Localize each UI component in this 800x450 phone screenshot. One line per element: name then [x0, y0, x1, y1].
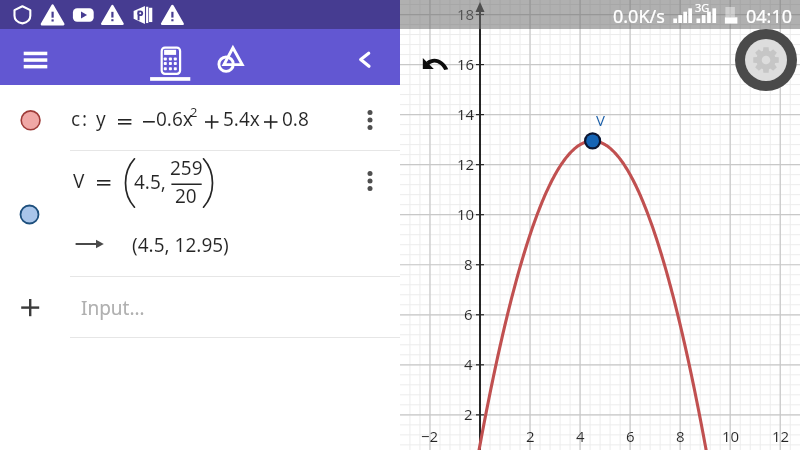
- staticText: 20: [175, 183, 197, 209]
- staticText: 0.6x: [156, 106, 193, 132]
- button[interactable]: Add input: [13, 290, 47, 324]
- staticText: 2: [464, 404, 473, 424]
- button[interactable]: More options: [356, 167, 384, 195]
- staticText: V: [73, 168, 85, 194]
- staticText: 12: [772, 426, 790, 446]
- staticText: −2: [421, 426, 439, 446]
- staticText: 4.5,: [134, 169, 166, 195]
- button[interactable]: More options: [356, 106, 384, 134]
- staticText: 10: [722, 426, 740, 446]
- staticText: 4: [576, 426, 585, 446]
- button[interactable]: [0, 85, 400, 150]
- staticText: V: [596, 110, 606, 130]
- staticText: 0.8: [282, 106, 309, 132]
- staticText: 3G: [695, 0, 710, 15]
- button[interactable]: Calculator: [148, 37, 192, 85]
- staticText: 259: [170, 155, 203, 181]
- staticText: 5.4x: [223, 106, 260, 132]
- staticText: 14: [457, 104, 475, 124]
- staticText: 2: [190, 103, 198, 121]
- button[interactable]: Settings: [735, 29, 797, 91]
- staticText: 2: [526, 426, 535, 446]
- staticText: 8: [676, 426, 685, 446]
- staticText: 18: [457, 4, 475, 24]
- button[interactable]: Geometry: [210, 38, 256, 78]
- staticText: :: [82, 106, 88, 132]
- staticText: 8: [464, 254, 473, 274]
- staticText: 04:10: [746, 4, 793, 29]
- button[interactable]: Undo: [418, 52, 454, 76]
- staticText: Input…: [81, 295, 145, 321]
- staticText: 6: [626, 426, 635, 446]
- staticText: 4: [464, 354, 473, 374]
- staticText: c: [71, 106, 81, 132]
- staticText: y: [96, 106, 106, 132]
- staticText: 16: [457, 54, 475, 74]
- button[interactable]: Back: [350, 41, 382, 73]
- staticText: 0.0K/s: [613, 4, 665, 29]
- staticText: 12: [457, 154, 475, 174]
- staticText: 6: [464, 304, 473, 324]
- staticText: 10: [457, 204, 475, 224]
- staticText: (4.5, 12.95): [132, 232, 229, 258]
- button[interactable]: Menu: [12, 31, 58, 77]
